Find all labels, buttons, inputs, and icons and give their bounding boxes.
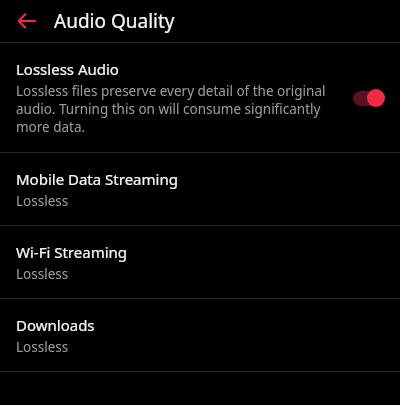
staticText: Lossless files preserve every detail of … — [16, 82, 344, 136]
staticText: Downloads — [16, 315, 95, 335]
staticText: Lossless — [16, 192, 69, 210]
button[interactable]: Back — [10, 4, 44, 38]
button[interactable]: Downloads — [0, 299, 400, 371]
button[interactable]: Lossless Audio — [0, 43, 400, 152]
button[interactable]: Mobile Data Streaming — [0, 153, 400, 225]
staticText: Audio Quality — [54, 8, 175, 34]
button[interactable]: Lossless Audio toggle — [352, 87, 386, 109]
staticText: Lossless Audio — [16, 59, 119, 79]
button[interactable]: Wi-Fi Streaming — [0, 226, 400, 298]
staticText: Lossless — [16, 338, 69, 356]
staticText: Lossless — [16, 265, 69, 283]
staticText: Wi-Fi Streaming — [16, 242, 128, 262]
staticText: Mobile Data Streaming — [16, 169, 178, 189]
